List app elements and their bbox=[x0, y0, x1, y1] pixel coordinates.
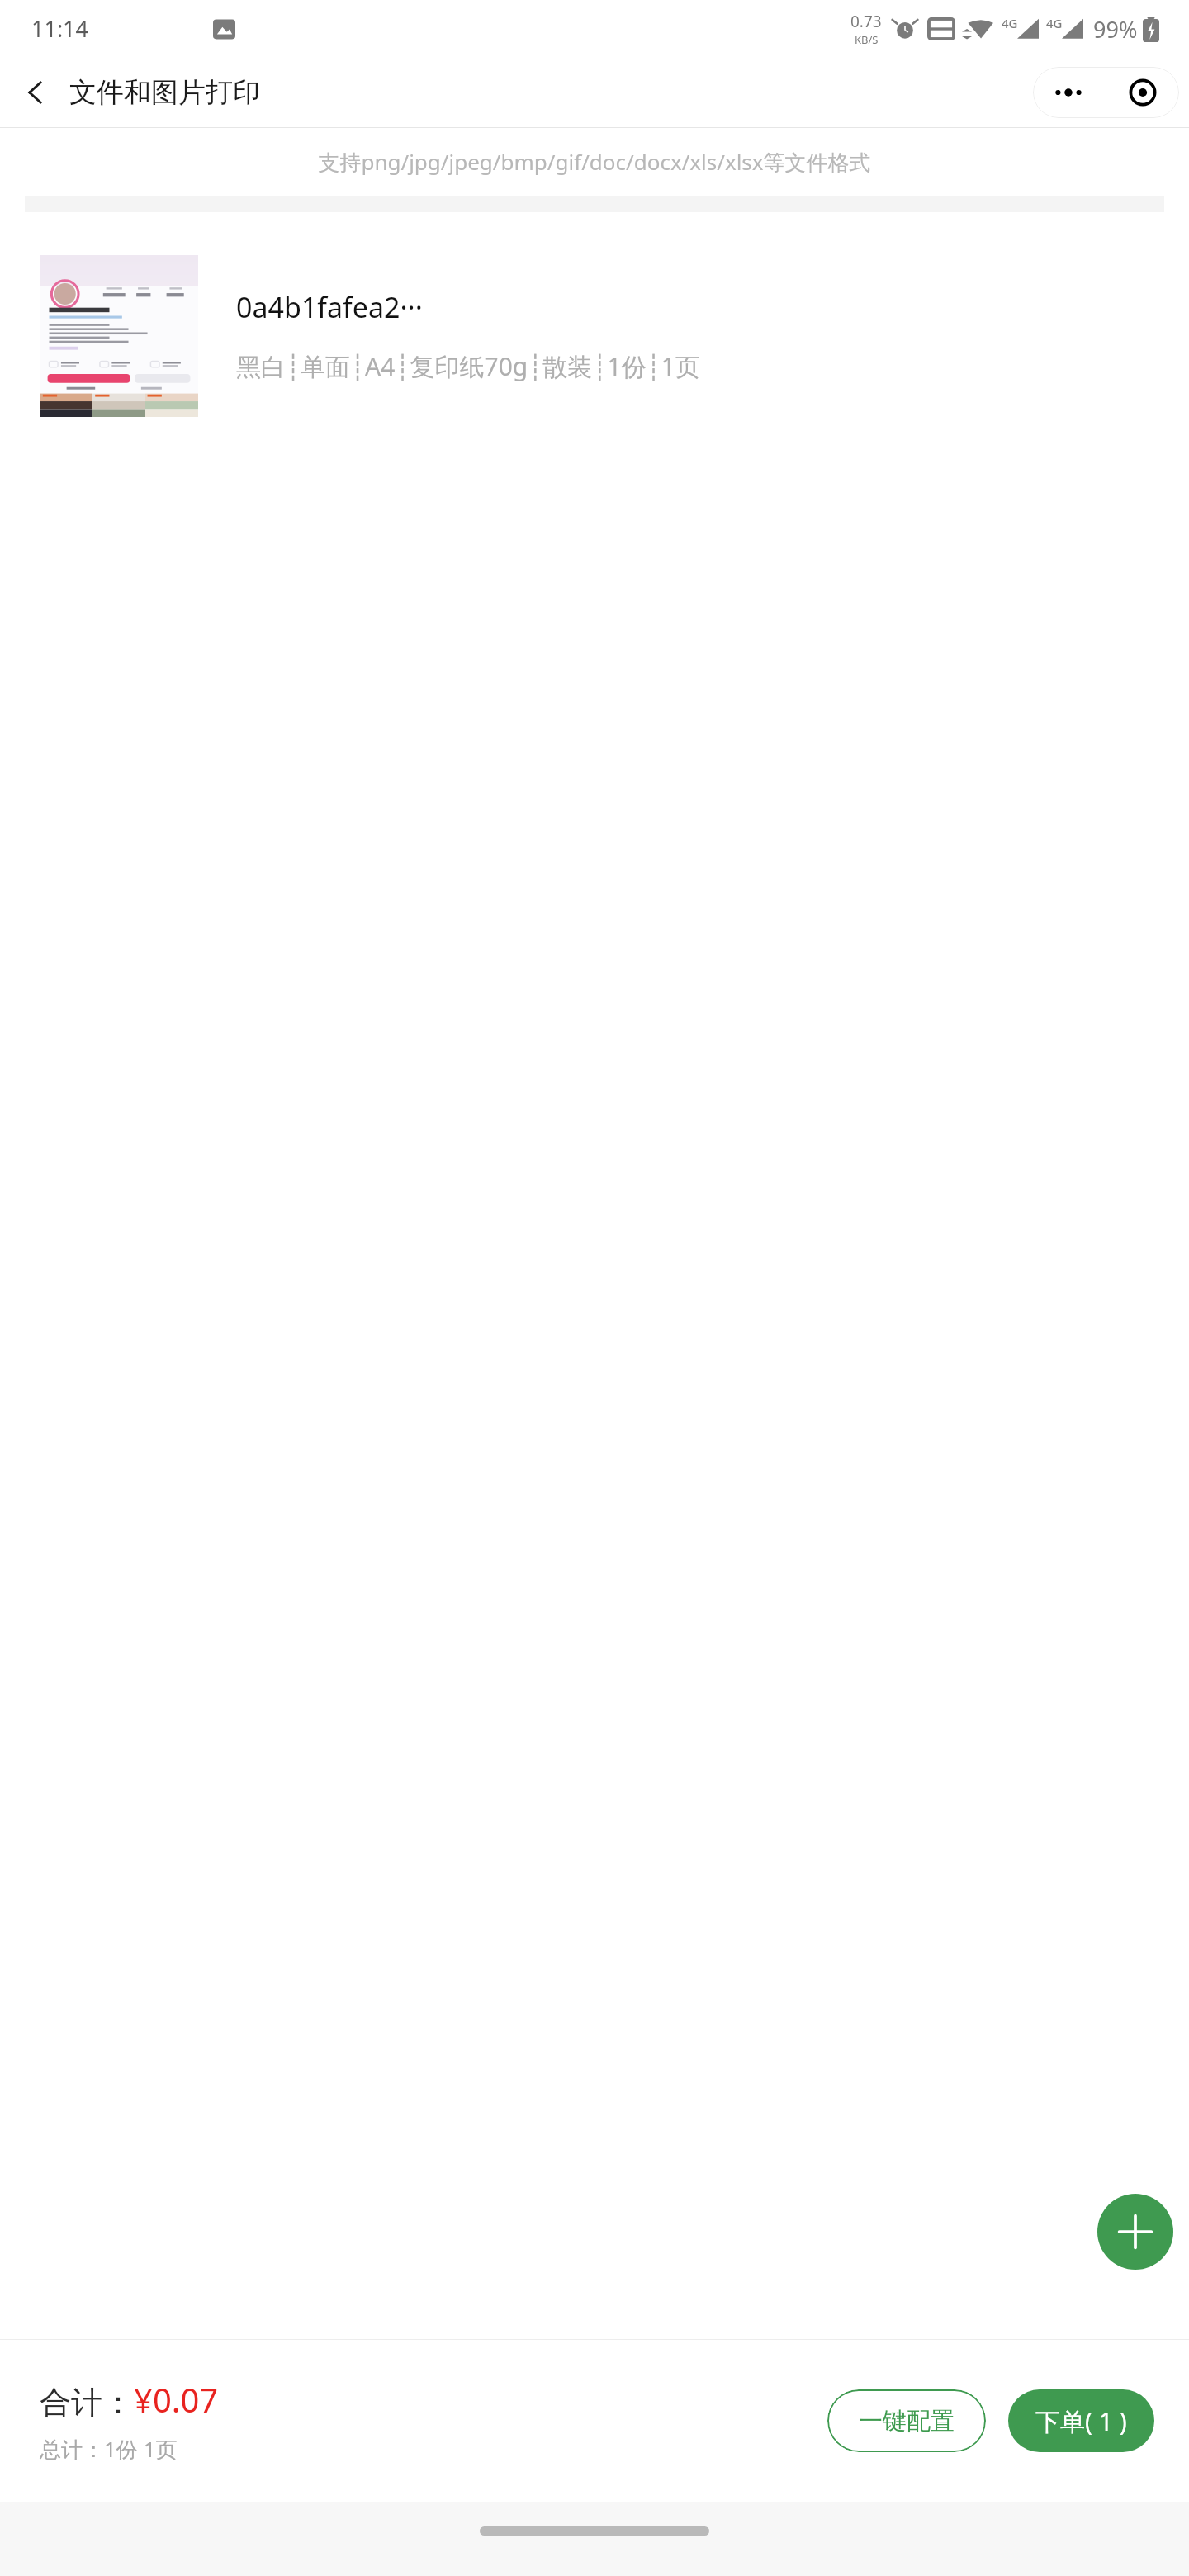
staticText: 11:14 bbox=[31, 13, 89, 44]
other: More bbox=[1055, 87, 1083, 98]
staticText: 99% bbox=[1093, 14, 1138, 45]
staticText: 4G bbox=[1046, 15, 1063, 31]
staticText: 支持png/jpg/jpeg/bmp/gif/doc/docx/xls/xlsx… bbox=[318, 147, 871, 177]
button[interactable]: 下单( 1 ) bbox=[1008, 2389, 1154, 2452]
button[interactable]: 一键配置 bbox=[827, 2389, 986, 2452]
staticText: 合计： bbox=[40, 2383, 134, 2422]
button[interactable]: 0a4b1fafea2··· bbox=[0, 239, 1189, 433]
button[interactable]: Back bbox=[8, 65, 63, 120]
staticText: 文件和图片打印 bbox=[69, 75, 260, 110]
button[interactable]: Add file bbox=[1097, 2194, 1173, 2270]
other: Close bbox=[1129, 78, 1157, 107]
staticText: 0.73 bbox=[850, 11, 882, 32]
staticText: 4G bbox=[1002, 15, 1018, 31]
staticText: 总计：1份 1页 bbox=[40, 2434, 178, 2464]
staticText: KB/S bbox=[855, 32, 879, 47]
staticText: 一键配置 bbox=[859, 2406, 955, 2436]
staticText: 黑白┊单面┊A4┊复印纸70g┊散装┊1份┊1页 bbox=[236, 349, 700, 383]
staticText: 0a4b1fafea2··· bbox=[236, 288, 423, 326]
staticText: 下单( 1 ) bbox=[1035, 2404, 1127, 2438]
button[interactable]: More bbox=[1033, 67, 1179, 118]
staticText: ¥0.07 bbox=[134, 2377, 219, 2422]
